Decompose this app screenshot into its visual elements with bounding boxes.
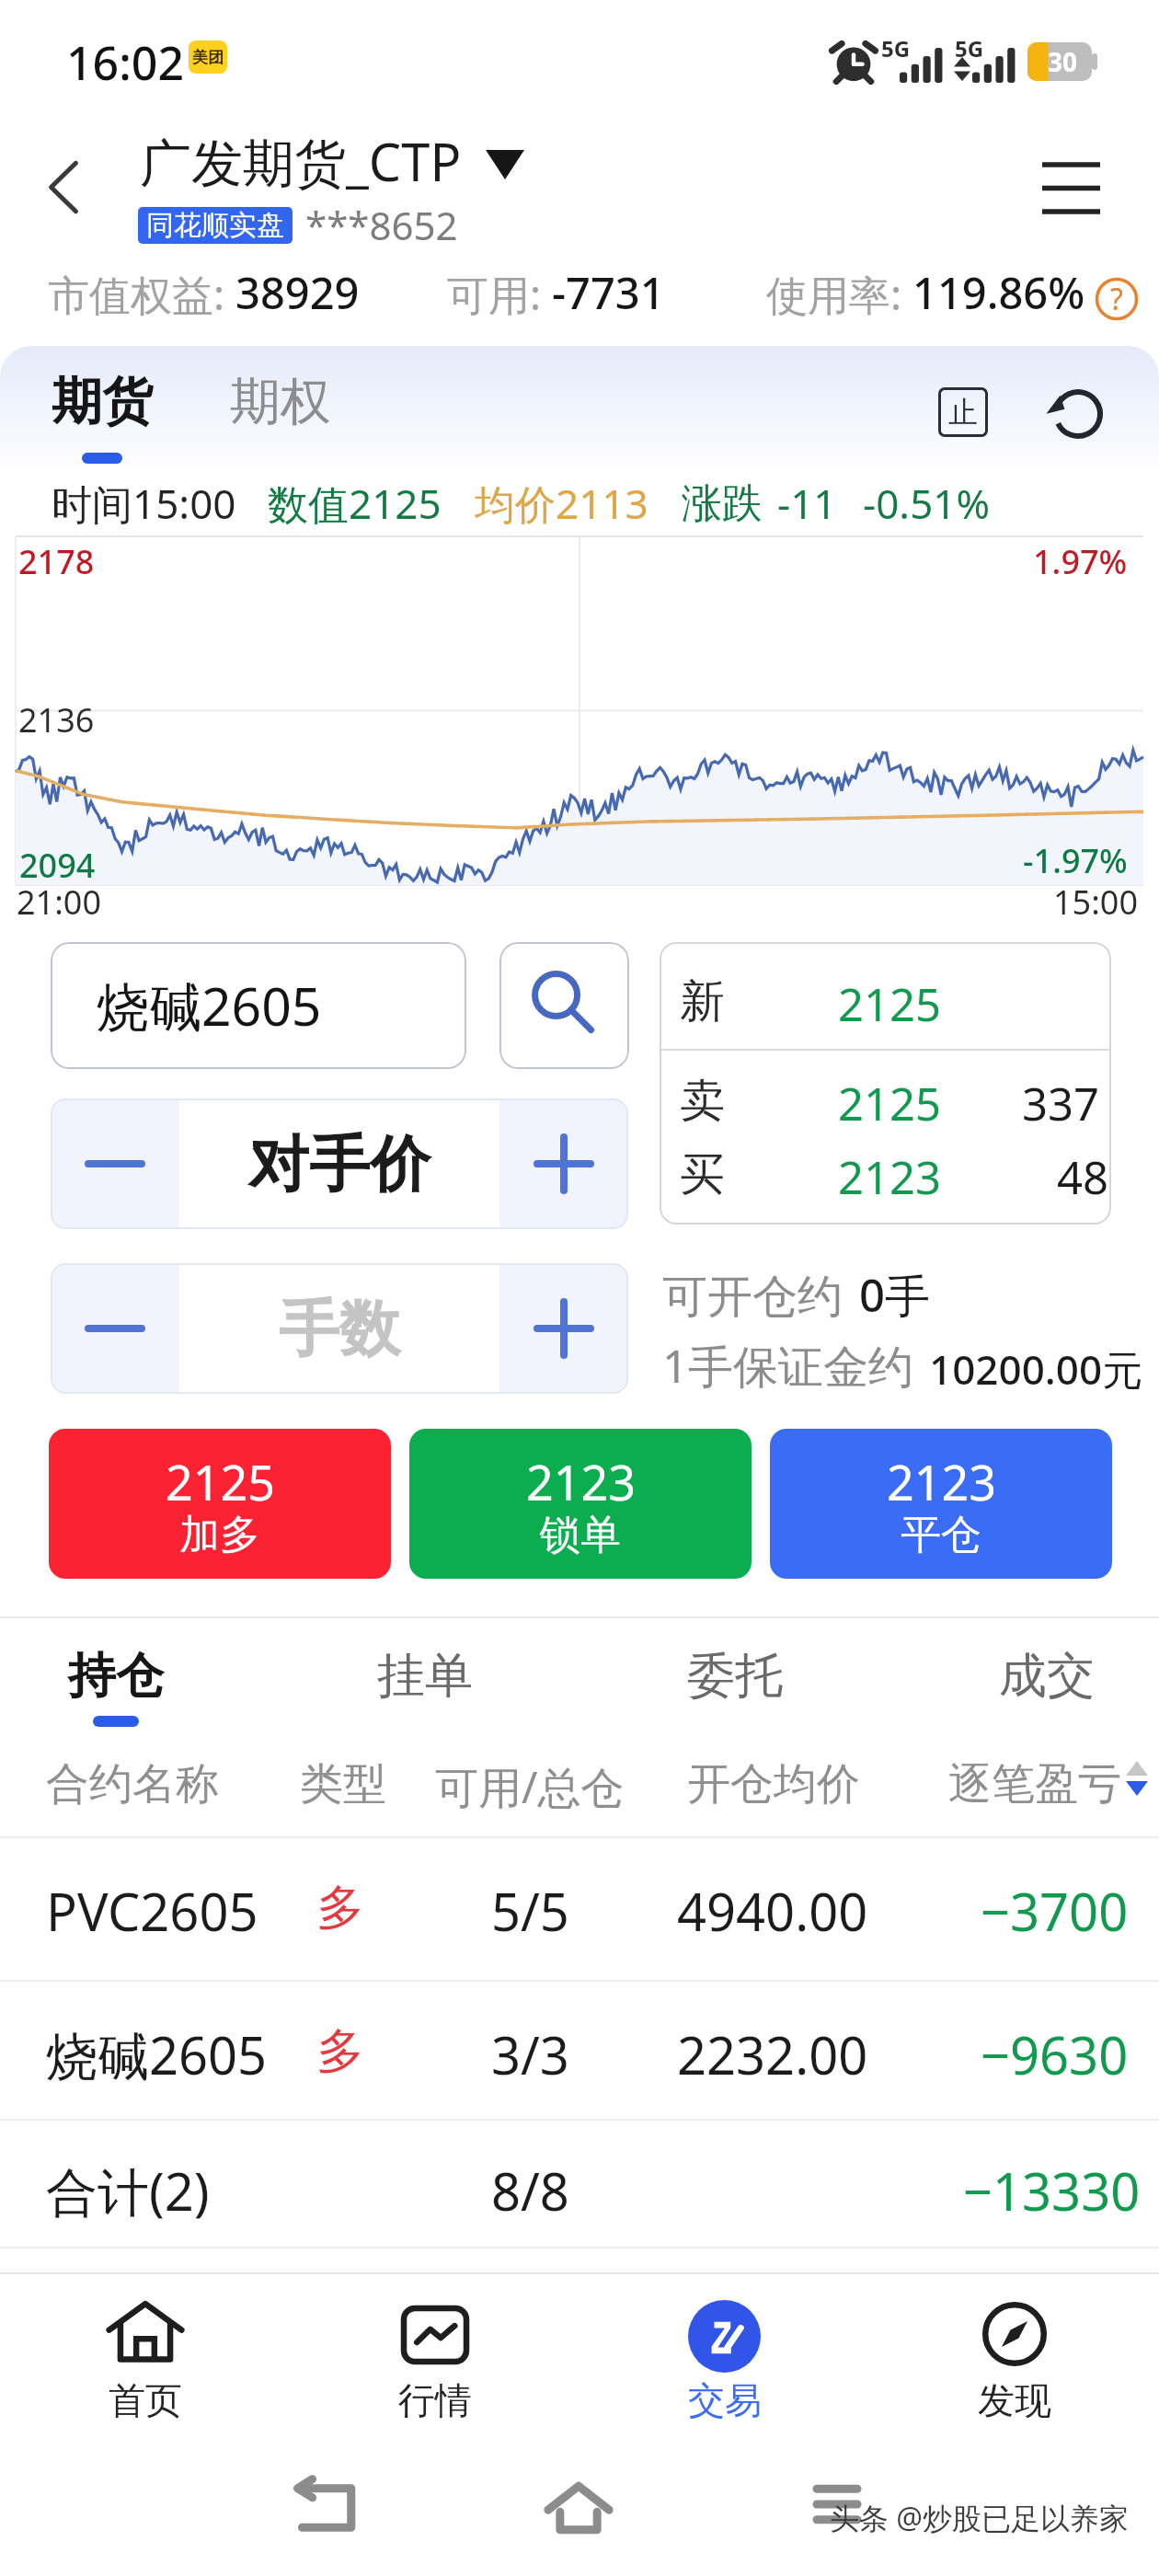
staticText: 持仓 [68, 1646, 164, 1707]
button[interactable]: 成交 [999, 1646, 1095, 1707]
staticText: 119.86% [912, 263, 1085, 322]
button[interactable]: Back [25, 148, 102, 225]
button[interactable]: Recent apps [782, 2449, 892, 2559]
staticText: 同花顺实盘 [146, 208, 284, 243]
staticText: 开仓均价 [687, 1757, 860, 1811]
staticText: 1手保证金约 [662, 1335, 914, 1397]
button[interactable]: Increase [499, 1098, 628, 1229]
button[interactable]: 对手价 [179, 1098, 499, 1229]
staticText: 2125 [838, 1073, 942, 1134]
staticText: PVC2605 [46, 1876, 258, 1946]
button[interactable]: Help [1095, 277, 1139, 321]
staticText: 手数 [279, 1291, 400, 1367]
button[interactable]: 烧碱2605 [0, 1981, 1159, 2120]
staticText: 委托 [687, 1646, 783, 1707]
button[interactable]: 期权 [230, 370, 331, 433]
staticText: -11 [777, 476, 837, 531]
staticText: 8/8 [491, 2156, 569, 2225]
staticText: 2125 [838, 973, 942, 1035]
button[interactable]: 2123 [409, 1429, 752, 1579]
button[interactable]: Decrease [51, 1098, 179, 1229]
staticText: 行情 [398, 2377, 472, 2423]
staticText: 2094 [19, 843, 96, 888]
staticText: 2123 [838, 1146, 942, 1208]
button[interactable]: 发现 [869, 2274, 1159, 2440]
staticText: 10200.00元 [929, 1341, 1143, 1397]
button[interactable]: 烧碱2605 [51, 942, 466, 1069]
staticText: 对手价 [248, 1126, 430, 1202]
staticText: 止 [948, 394, 978, 431]
staticText: 合约名称 [46, 1757, 219, 1811]
staticText: 广发期货_CTP [140, 126, 462, 196]
staticText: ***8652 [305, 199, 458, 251]
staticText: 发现 [978, 2377, 1051, 2423]
staticText: 新 [680, 973, 725, 1030]
button[interactable]: 逐笔盈亏 [948, 1746, 1121, 1800]
staticText: 卖 [680, 1073, 725, 1130]
button[interactable]: PVC2605 [0, 1837, 1159, 1981]
staticText: 头条 @炒股已足以养家 [830, 2498, 1130, 2538]
button[interactable]: Home [523, 2453, 634, 2563]
staticText: 5G [881, 33, 911, 63]
staticText: 2136 [18, 697, 95, 742]
staticText: 均价2113 [475, 476, 648, 531]
staticText: 时间15:00 [52, 476, 236, 531]
staticText: 1.97% [1033, 539, 1128, 584]
staticText: −9630 [981, 2019, 1129, 2089]
staticText: 21:00 [17, 880, 102, 925]
staticText: 市值权益: [48, 266, 235, 322]
staticText: 2123 [526, 1449, 636, 1514]
staticText: 可用/总仓 [435, 1757, 625, 1816]
staticText: -0.51% [863, 476, 991, 531]
button[interactable]: Menu [1027, 144, 1115, 231]
staticText: 5G [955, 33, 984, 63]
button[interactable]: Increase [499, 1263, 628, 1394]
staticText: 类型 [300, 1757, 386, 1811]
staticText: −3700 [981, 1876, 1129, 1946]
button[interactable]: Decrease [51, 1263, 179, 1394]
staticText: 2125 [166, 1449, 275, 1514]
staticText: 4940.00 [677, 1876, 868, 1946]
button[interactable]: 持仓 [68, 1646, 164, 1727]
staticText: 5/5 [491, 1876, 569, 1946]
staticText: 38929 [235, 263, 360, 322]
button[interactable]: Search [499, 942, 629, 1069]
staticText: −13330 [963, 2156, 1141, 2225]
staticText: 加多 [179, 1510, 260, 1560]
staticText: 烧碱2605 [46, 2019, 268, 2089]
staticText: 涨跌 [682, 478, 763, 529]
button[interactable]: 挂单 [377, 1646, 473, 1707]
staticText: 48 [1057, 1146, 1109, 1208]
staticText: 锁单 [540, 1510, 621, 1560]
button[interactable]: 2125 [49, 1429, 391, 1579]
staticText: 可用: [447, 266, 552, 322]
button[interactable]: 首页 [0, 2274, 290, 2440]
button[interactable]: Back [269, 2453, 379, 2563]
button[interactable]: 交易 [579, 2274, 869, 2440]
staticText: -7731 [552, 263, 665, 322]
staticText: 数值2125 [268, 476, 442, 531]
staticText: 合计(2) [46, 2156, 210, 2225]
button[interactable]: 行情 [290, 2274, 579, 2440]
staticText: 首页 [109, 2377, 182, 2423]
staticText: 2178 [18, 539, 95, 584]
staticText: 烧碱2605 [97, 970, 322, 1041]
staticText: 挂单 [377, 1646, 473, 1707]
button[interactable]: 期货 [52, 370, 153, 464]
button[interactable]: Stop loss [938, 387, 988, 437]
button[interactable]: 委托 [687, 1646, 783, 1707]
staticText: ? [1110, 279, 1123, 319]
button[interactable]: 手数 [179, 1263, 499, 1394]
staticText: 买 [680, 1146, 725, 1203]
button[interactable]: 合计(2) [0, 2120, 1159, 2247]
staticText: 期货 [52, 370, 153, 433]
button[interactable]: Refresh [1045, 381, 1111, 447]
button[interactable]: 2123 [770, 1429, 1112, 1579]
staticText: 3/3 [491, 2019, 569, 2089]
staticText: 30 [1048, 44, 1078, 79]
staticText: 可开仓约 [662, 1269, 843, 1326]
staticText: 2123 [887, 1449, 996, 1514]
staticText: 期权 [230, 370, 331, 433]
staticText: -1.97% [1023, 838, 1128, 883]
staticText: 使用率: [766, 266, 912, 322]
